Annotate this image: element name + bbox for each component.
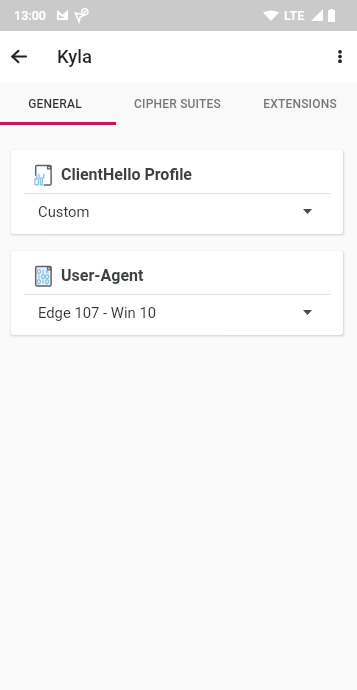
staticText: Kyla [57, 46, 93, 68]
button[interactable]: Custom [11, 194, 343, 234]
staticText: Edge 107 - Win 10 [38, 304, 157, 321]
button[interactable]: Back [0, 31, 37, 82]
staticText: Custom [38, 203, 90, 220]
staticText: User-Agent [61, 266, 144, 285]
staticText: GENERAL [28, 97, 82, 111]
button[interactable]: CIPHER SUITES [116, 82, 238, 125]
staticText: CIPHER SUITES [134, 97, 221, 111]
staticText: EXTENSIONS [263, 97, 337, 111]
button[interactable]: Edge 107 - Win 10 [11, 295, 343, 335]
button[interactable]: EXTENSIONS [242, 82, 357, 125]
staticText: ClientHello Profile [61, 165, 193, 184]
button[interactable]: GENERAL [0, 82, 116, 125]
button[interactable]: More options [323, 31, 356, 82]
staticText: LTE [284, 8, 305, 23]
staticText: 13:00 [14, 8, 46, 23]
